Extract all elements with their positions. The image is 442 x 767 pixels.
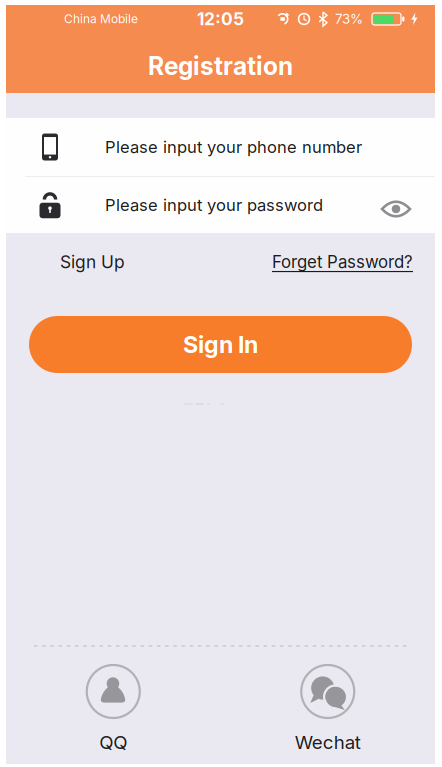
button[interactable]: QQ <box>6 665 220 754</box>
button[interactable]: Forget Password? <box>272 252 413 272</box>
staticText: 12:05 <box>197 8 244 29</box>
staticText: 73% <box>335 11 363 27</box>
staticText: Sign In <box>183 330 258 359</box>
button[interactable]: Wechat <box>220 665 435 754</box>
staticText: Forget Password? <box>272 252 413 272</box>
staticText: Wechat <box>295 731 361 754</box>
button[interactable]: Please input your password <box>6 177 435 233</box>
staticText: China Mobile <box>64 12 138 26</box>
button[interactable]: Sign In <box>29 316 412 373</box>
staticText: Sign Up <box>60 251 125 272</box>
staticText: Please input your phone number <box>105 137 362 157</box>
button[interactable]: Sign Up <box>60 251 125 272</box>
staticText: Registration <box>148 51 293 81</box>
staticText: Please input your password <box>105 195 323 215</box>
button[interactable]: Show password <box>381 196 411 214</box>
staticText: QQ <box>99 731 127 754</box>
button[interactable]: Please input your phone number <box>6 118 435 176</box>
